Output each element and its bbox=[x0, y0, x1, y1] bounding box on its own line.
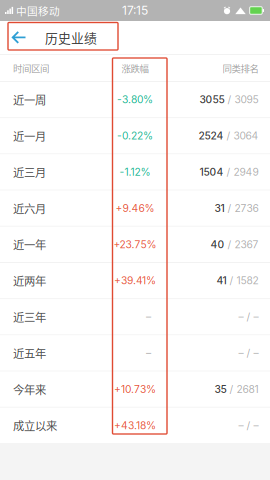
staticText: 3095 bbox=[234, 93, 258, 106]
staticText: 2736 bbox=[234, 202, 258, 214]
button[interactable]: 近六月 bbox=[0, 191, 270, 226]
staticText: 1582 bbox=[236, 274, 258, 287]
staticText: 近三年 bbox=[13, 309, 46, 325]
staticText: 近三月 bbox=[13, 164, 46, 180]
staticText: 今年来 bbox=[13, 381, 46, 397]
staticText: 41 bbox=[216, 274, 226, 287]
staticText: 35 bbox=[214, 383, 226, 395]
staticText: +39.41% bbox=[114, 274, 156, 287]
staticText: 中国移动 bbox=[14, 3, 60, 18]
staticText: 1504 bbox=[199, 166, 223, 178]
staticText: – bbox=[238, 419, 243, 432]
staticText: 3055 bbox=[199, 93, 224, 106]
button[interactable]: 近三月 bbox=[0, 154, 270, 190]
staticText: / bbox=[224, 238, 234, 251]
staticText: – bbox=[238, 311, 243, 323]
staticText: 时间区间 bbox=[13, 61, 49, 75]
staticText: / bbox=[243, 419, 253, 432]
staticText: / bbox=[243, 347, 253, 359]
button[interactable]: 历史业绩 bbox=[45, 21, 97, 54]
button[interactable]: 近三年 bbox=[0, 299, 270, 334]
button[interactable]: 近一周 bbox=[0, 82, 270, 117]
staticText: / bbox=[224, 202, 234, 214]
button[interactable]: 成立以来 bbox=[0, 408, 270, 443]
staticText: +9.46% bbox=[115, 202, 154, 214]
staticText: 近两年 bbox=[13, 272, 46, 289]
staticText: +43.18% bbox=[114, 419, 156, 432]
staticText: 涨跌幅 bbox=[121, 61, 148, 75]
staticText: -3.80% bbox=[117, 93, 153, 106]
button[interactable]: 近两年 bbox=[0, 263, 270, 298]
staticText: / bbox=[224, 93, 234, 106]
staticText: 同类排名 bbox=[222, 61, 258, 75]
staticText: 40 bbox=[210, 238, 224, 251]
staticText: 成立以来 bbox=[13, 417, 57, 434]
button[interactable]: 近五年 bbox=[0, 335, 270, 371]
staticText: 近一年 bbox=[13, 236, 46, 253]
staticText: 2524 bbox=[198, 130, 223, 142]
staticText: -1.12% bbox=[119, 166, 150, 178]
staticText: 2681 bbox=[236, 383, 258, 395]
staticText: / bbox=[223, 130, 233, 142]
staticText: 近六月 bbox=[13, 200, 46, 216]
staticText: 31 bbox=[214, 202, 224, 214]
staticText: 近五年 bbox=[13, 345, 46, 361]
button[interactable]: 返回 bbox=[0, 21, 45, 54]
staticText: -0.22% bbox=[117, 130, 153, 142]
staticText: 17:15 bbox=[122, 3, 148, 18]
staticText: 历史业绩 bbox=[45, 28, 97, 47]
staticText: +10.73% bbox=[114, 383, 156, 395]
staticText: – bbox=[146, 311, 151, 323]
staticText: +23.75% bbox=[113, 238, 156, 251]
staticText: 近一周 bbox=[13, 91, 46, 108]
staticText: 2949 bbox=[233, 166, 258, 178]
button[interactable]: 近一月 bbox=[0, 118, 270, 153]
button[interactable]: 近一年 bbox=[0, 227, 270, 262]
staticText: / bbox=[243, 311, 253, 323]
staticText: – bbox=[238, 347, 243, 359]
button[interactable]: 今年来 bbox=[0, 372, 270, 407]
staticText: – bbox=[146, 347, 151, 359]
staticText: / bbox=[226, 274, 236, 287]
staticText: 2367 bbox=[234, 238, 258, 251]
staticText: 近一月 bbox=[13, 128, 46, 144]
staticText: 3064 bbox=[233, 130, 258, 142]
staticText: – bbox=[253, 347, 258, 359]
staticText: / bbox=[226, 383, 236, 395]
staticText: – bbox=[253, 311, 258, 323]
staticText: / bbox=[223, 166, 233, 178]
staticText: – bbox=[253, 419, 258, 432]
